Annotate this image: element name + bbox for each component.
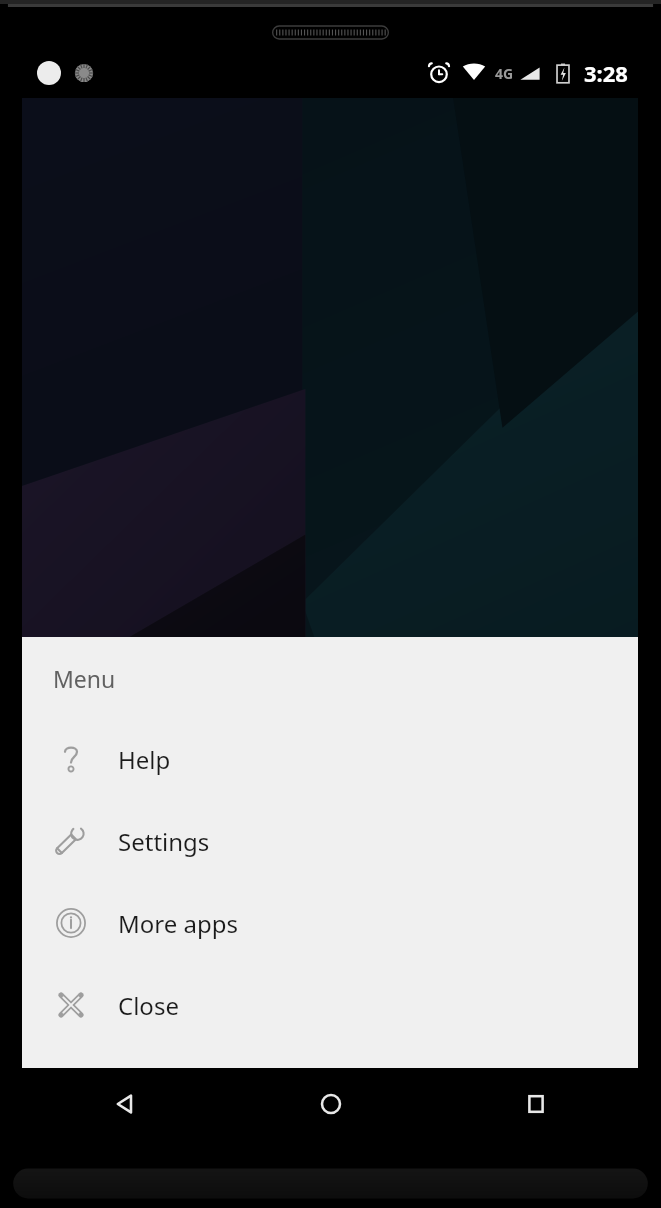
button[interactable]: Settings bbox=[22, 800, 638, 882]
staticText: More apps bbox=[118, 907, 238, 940]
button[interactable]: Help bbox=[22, 718, 638, 800]
button[interactable]: Close bbox=[22, 964, 638, 1046]
button[interactable]: Back bbox=[22, 1068, 228, 1140]
staticText: Menu bbox=[53, 663, 116, 694]
staticText: Settings bbox=[118, 825, 210, 858]
button[interactable]: Home bbox=[228, 1068, 433, 1140]
button[interactable]: Recent apps bbox=[433, 1068, 638, 1140]
staticText: Close bbox=[118, 989, 179, 1022]
staticText: 3:28 bbox=[584, 58, 628, 88]
staticText: Help bbox=[118, 743, 171, 776]
staticText: 4G bbox=[495, 64, 514, 83]
button[interactable]: More apps bbox=[22, 882, 638, 964]
